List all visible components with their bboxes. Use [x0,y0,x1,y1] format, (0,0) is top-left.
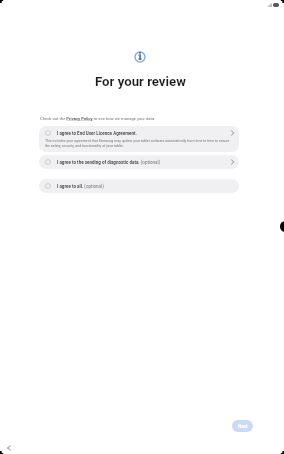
staticText: I agree to End User Licence Agreement. [57,131,229,136]
staticText: This includes your agreement that Samsun… [45,139,235,148]
button[interactable]: I agree to all. (optional) [39,179,239,193]
staticText: For your review [95,74,186,89]
staticText: Check out the Privacy Policy to see how … [40,116,156,121]
staticText: I agree to all. (optional) [57,184,235,189]
button[interactable]: Back [3,442,14,453]
button[interactable]: Check out the Privacy Policy to see how … [40,116,244,121]
button[interactable]: Next [232,420,253,432]
button[interactable]: I agree to the sending of diagnostic dat… [39,155,239,169]
staticText: Next [238,424,248,429]
staticText: I agree to the sending of diagnostic dat… [57,160,229,165]
button[interactable]: I agree to End User Licence Agreement. [39,126,239,152]
